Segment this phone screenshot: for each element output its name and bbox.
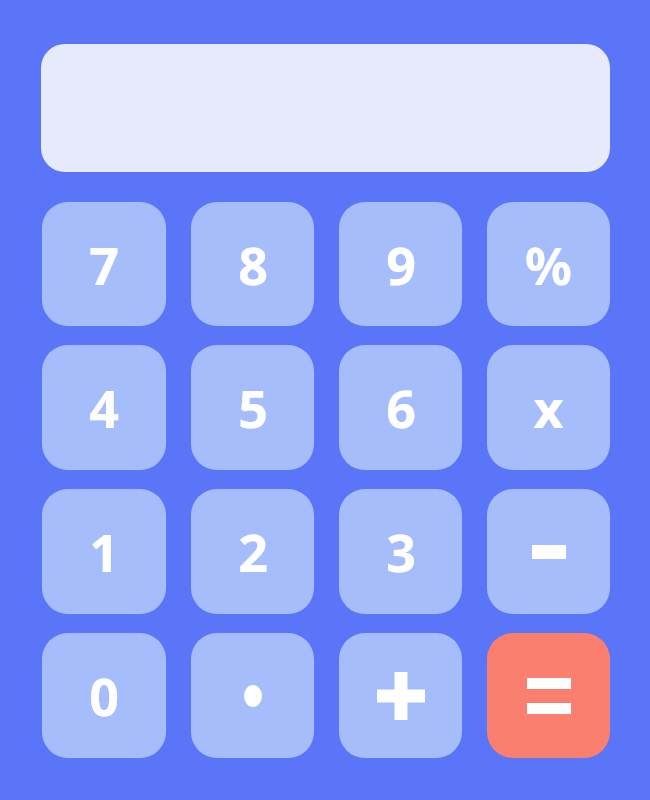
button[interactable]: Percent (487, 202, 610, 326)
staticText: x (533, 372, 564, 443)
staticText: 1 (89, 516, 119, 587)
staticText: 6 (386, 372, 416, 443)
staticText: 3 (386, 516, 416, 587)
button[interactable]: 0 (42, 633, 166, 758)
button[interactable]: Decimal point (191, 633, 314, 758)
button[interactable]: 4 (42, 345, 166, 470)
button[interactable]: 1 (42, 489, 166, 614)
button[interactable]: 5 (191, 345, 314, 470)
button[interactable]: 9 (339, 202, 462, 326)
button[interactable]: 7 (42, 202, 166, 326)
button[interactable]: 3 (339, 489, 462, 614)
button[interactable]: 8 (191, 202, 314, 326)
button[interactable]: 2 (191, 489, 314, 614)
button[interactable]: Display (41, 44, 610, 172)
button[interactable]: Minus (487, 489, 610, 614)
button[interactable]: Multiply (487, 345, 610, 470)
staticText: 5 (238, 372, 268, 443)
button[interactable]: Plus (339, 633, 462, 758)
staticText: 4 (89, 372, 119, 443)
staticText: 0 (89, 660, 119, 731)
staticText: 7 (89, 229, 119, 300)
staticText: 9 (386, 229, 416, 300)
staticText: 2 (238, 516, 268, 587)
staticText: 8 (238, 229, 268, 300)
staticText: % (525, 229, 572, 300)
button[interactable]: 6 (339, 345, 462, 470)
button[interactable]: Equals (487, 633, 610, 758)
